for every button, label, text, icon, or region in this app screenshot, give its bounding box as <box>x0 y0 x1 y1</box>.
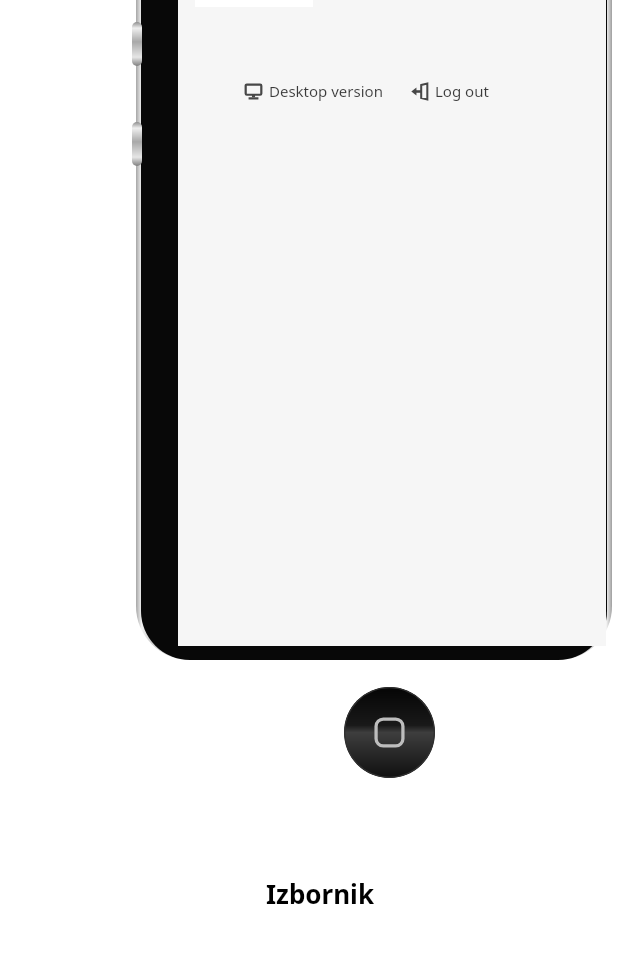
staticText: Izbornik <box>0 876 640 911</box>
button[interactable]: Volume <box>132 22 142 66</box>
button[interactable]: Home <box>344 687 435 778</box>
staticText: Log out <box>435 81 489 101</box>
button[interactable]: Desktop version <box>243 77 385 105</box>
button[interactable]: Volume <box>132 122 142 166</box>
button[interactable]: Log out <box>409 77 491 105</box>
staticText: Desktop version <box>269 81 383 101</box>
